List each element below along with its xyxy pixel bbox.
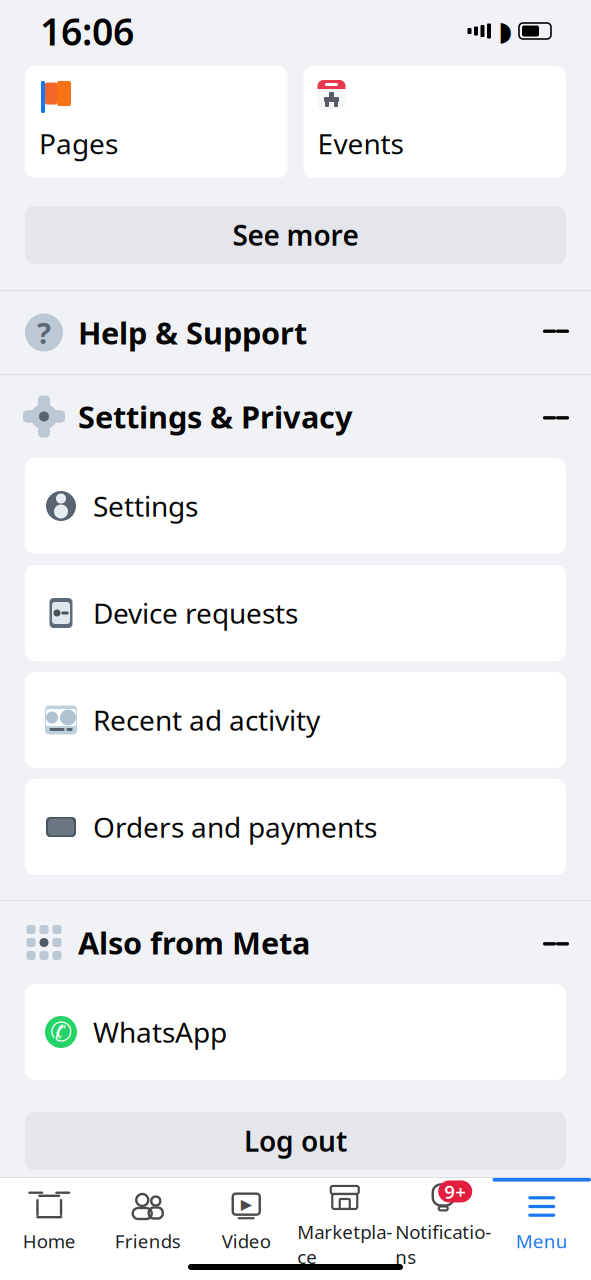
staticText: See more bbox=[232, 216, 358, 254]
staticText: ◗ bbox=[498, 16, 512, 46]
staticText: Marketplace bbox=[297, 1219, 392, 1269]
button[interactable]: Marketplace bbox=[295, 1178, 394, 1260]
staticText: Also from Meta bbox=[78, 922, 310, 963]
button[interactable]: ? bbox=[0, 291, 591, 374]
staticText: WhatsApp bbox=[93, 1013, 227, 1051]
button[interactable]: Also from Meta bbox=[0, 901, 591, 984]
staticText: Pages bbox=[39, 125, 118, 162]
button[interactable]: ✆ bbox=[25, 984, 566, 1080]
staticText: Orders and payments bbox=[93, 808, 377, 846]
button[interactable]: Device requests bbox=[25, 565, 566, 661]
button[interactable]: Pages bbox=[25, 66, 287, 178]
staticText: ▶ bbox=[241, 1196, 252, 1212]
button[interactable]: Menu bbox=[492, 1178, 591, 1260]
staticText: 16:06 bbox=[40, 6, 134, 56]
staticText: 9+ bbox=[444, 1179, 466, 1204]
button[interactable]: Log out bbox=[25, 1112, 566, 1170]
staticText: ✆ bbox=[50, 1017, 72, 1047]
button[interactable]: Settings bbox=[25, 458, 566, 554]
staticText: Events bbox=[317, 125, 403, 162]
button[interactable]: Friends bbox=[98, 1178, 197, 1260]
staticText: Recent ad activity bbox=[93, 701, 320, 739]
button[interactable]: Orders and payments bbox=[25, 779, 566, 875]
button[interactable]: ▶ bbox=[197, 1178, 295, 1260]
button[interactable]: Events bbox=[303, 66, 566, 178]
button[interactable]: Recent ad activity bbox=[25, 672, 566, 768]
staticText: Log out bbox=[244, 1122, 347, 1160]
staticText: Video bbox=[222, 1228, 271, 1253]
staticText: Friends bbox=[115, 1228, 181, 1253]
button[interactable]: Settings & Privacy bbox=[0, 375, 591, 458]
staticText: Menu bbox=[516, 1228, 568, 1253]
staticText: Help & Support bbox=[78, 312, 307, 353]
staticText: ? bbox=[37, 313, 51, 352]
staticText: Settings bbox=[93, 487, 198, 525]
staticText: Settings & Privacy bbox=[78, 396, 353, 437]
staticText: Home bbox=[23, 1228, 76, 1253]
staticText: Device requests bbox=[93, 594, 298, 632]
staticText: Notifications bbox=[395, 1219, 491, 1269]
button[interactable]: See more bbox=[25, 206, 566, 264]
button[interactable]: 9+ bbox=[394, 1178, 492, 1260]
button[interactable]: Home bbox=[0, 1178, 98, 1260]
